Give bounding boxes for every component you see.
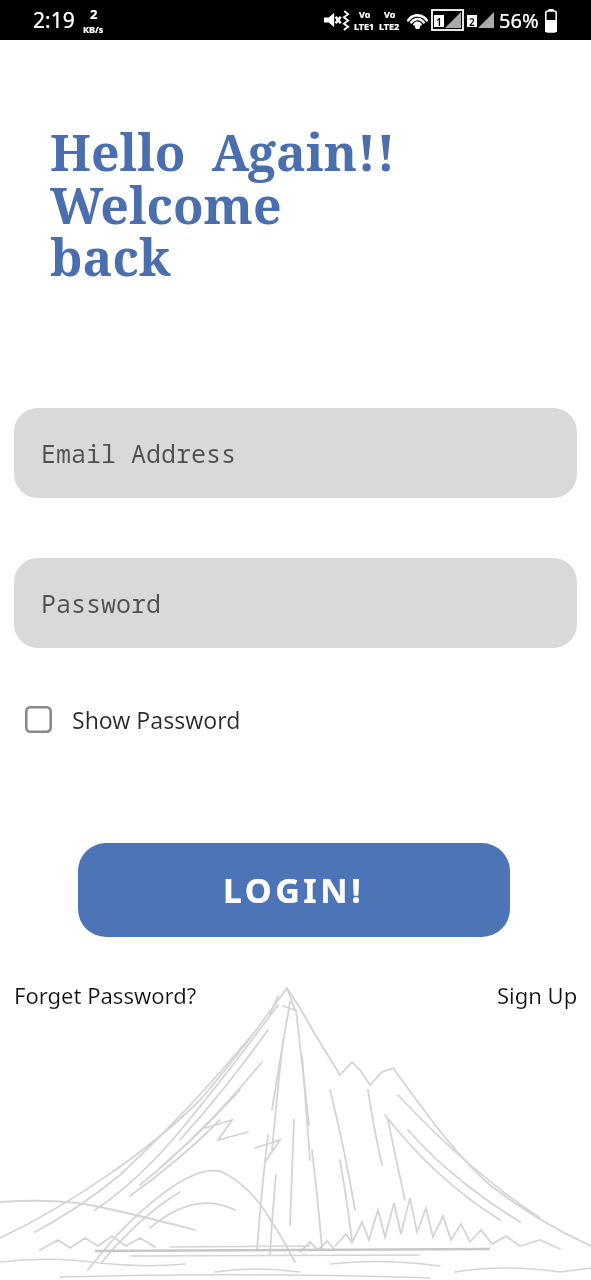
staticText: 2 [90,5,98,23]
staticText: LTE2 [379,20,400,32]
staticText: 56% [499,7,539,34]
staticText: LTE1 [354,20,375,32]
staticText: LOGIN! [223,867,365,913]
staticText: Password [41,586,162,620]
staticText: Hello Again!! Welcome back [50,118,396,290]
staticText: 2:19 [33,6,75,35]
button[interactable]: Sign Up [497,980,578,1010]
staticText: 2 [469,15,475,27]
button[interactable]: Password [14,558,577,648]
button[interactable]: LOGIN! [78,843,510,937]
staticText: Vo [384,8,396,20]
staticText: Show Password [72,704,241,735]
button[interactable]: Forget Password? [14,980,197,1010]
button[interactable]: Email Address [14,408,577,498]
staticText: Email Address [41,436,237,470]
staticText: 1 [436,15,442,27]
staticText: KB/s [83,23,104,35]
staticText: Vo [359,8,371,20]
button[interactable]: Show Password [25,704,241,735]
